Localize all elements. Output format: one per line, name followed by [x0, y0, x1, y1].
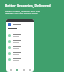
- staticText: Better Groceries, Delivered: [5, 3, 51, 8]
- button[interactable]: Tab 2: [21, 67, 26, 72]
- button[interactable]: [8, 44, 32, 50]
- button[interactable]: [8, 50, 32, 56]
- button[interactable]: Tab 3: [27, 67, 32, 72]
- button[interactable]: Tab 1: [14, 67, 19, 72]
- button[interactable]: Tab 0: [8, 67, 13, 72]
- button[interactable]: [8, 38, 32, 44]
- button[interactable]: [8, 32, 32, 38]
- staticText: Faster orders, smarter lists and deliver…: [5, 9, 40, 15]
- button[interactable]: [8, 56, 32, 62]
